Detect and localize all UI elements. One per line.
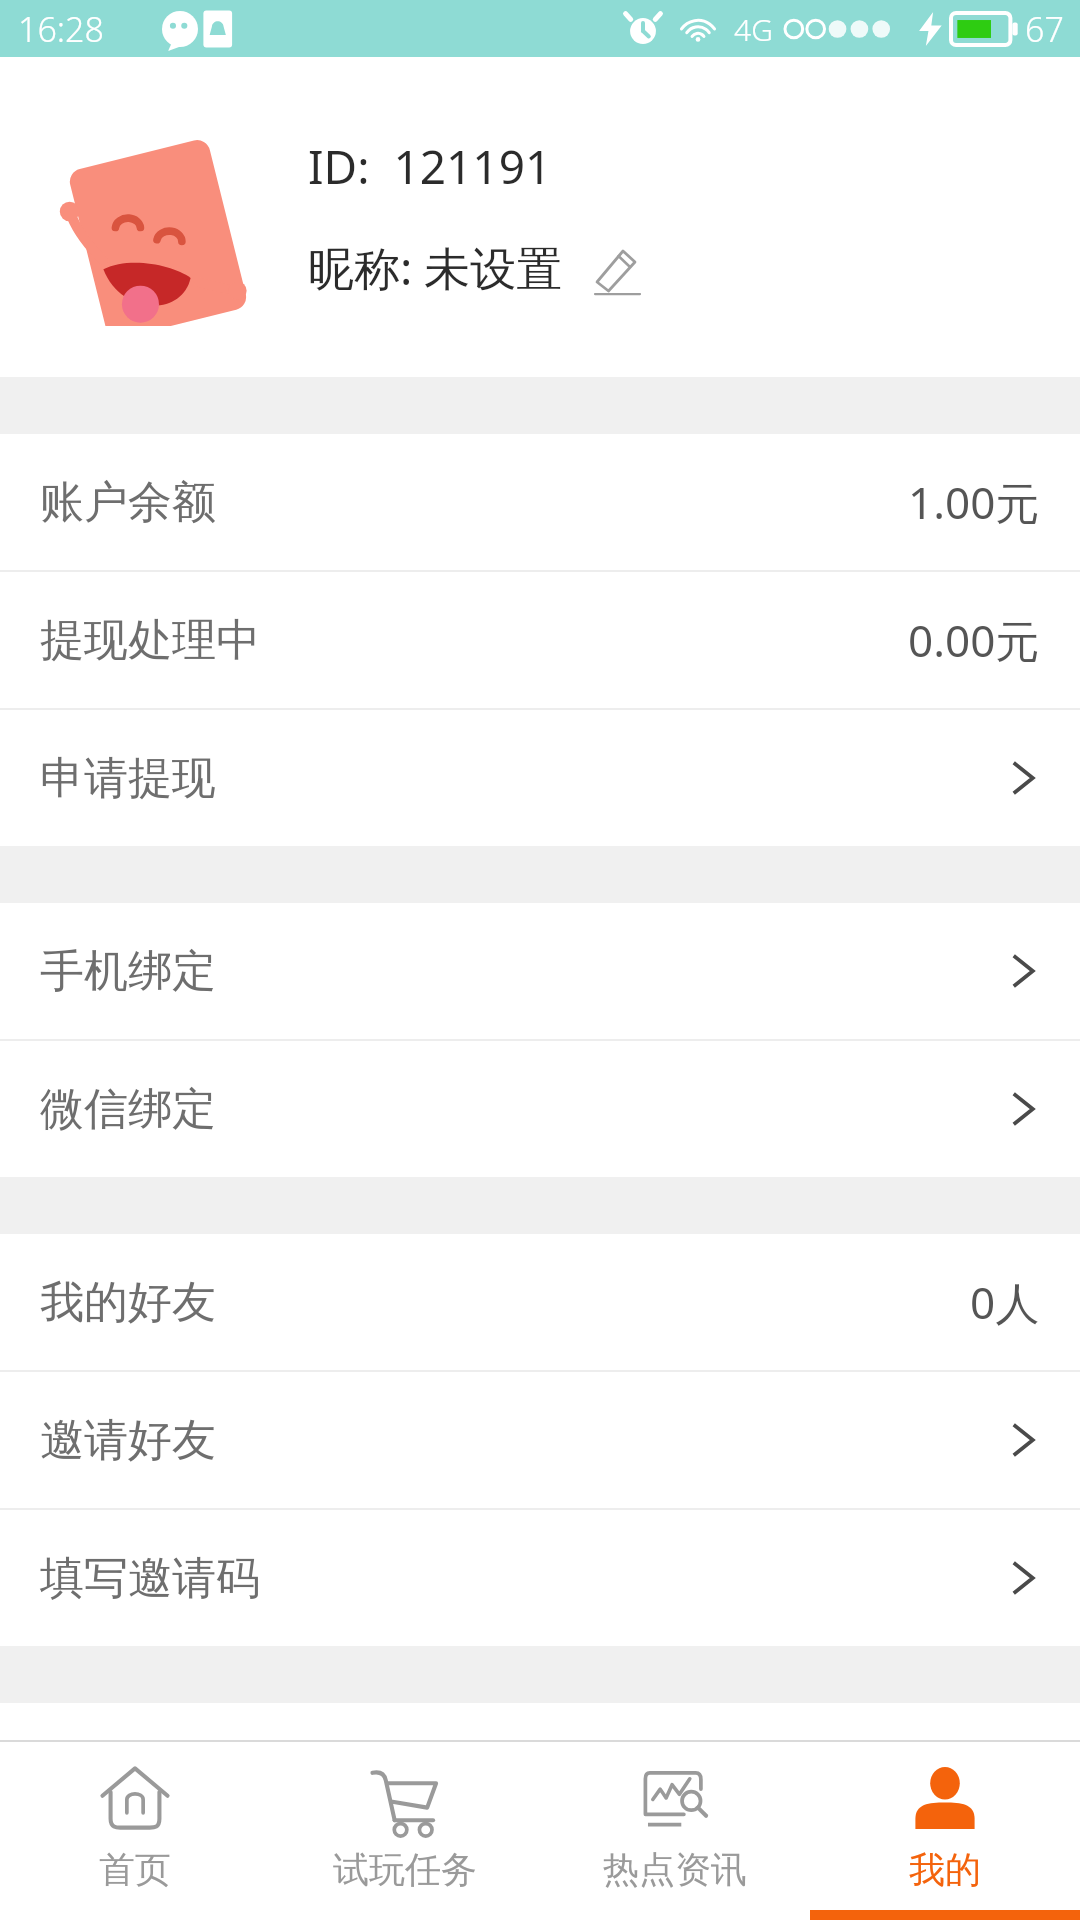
staticText: 提现处理中 bbox=[40, 613, 260, 668]
button[interactable]: 邀请好友 bbox=[0, 1372, 1080, 1508]
staticText: 填写邀请码 bbox=[40, 1551, 260, 1606]
staticText: 手机绑定 bbox=[40, 944, 216, 999]
staticText: 16:28 bbox=[18, 6, 104, 52]
button[interactable]: 编辑昵称 bbox=[589, 240, 645, 296]
staticText: 邀请好友 bbox=[40, 1413, 216, 1468]
staticText: 67 bbox=[1025, 6, 1064, 52]
staticText: 昵称: 未设置 bbox=[308, 236, 563, 299]
staticText: 1.00元 bbox=[908, 472, 1040, 532]
button[interactable]: 填写邀请码 bbox=[0, 1510, 1080, 1646]
button[interactable]: 我的 bbox=[810, 1742, 1080, 1910]
staticText: 微信绑定 bbox=[40, 1082, 216, 1137]
button[interactable]: 我的好友 bbox=[0, 1234, 1080, 1370]
button[interactable]: 头像 bbox=[38, 108, 256, 326]
staticText: 我的 bbox=[909, 1847, 981, 1892]
staticText: 试玩任务 bbox=[333, 1847, 477, 1892]
button[interactable]: 首页 bbox=[0, 1742, 270, 1910]
staticText: 4G bbox=[734, 9, 773, 50]
staticText: 我的好友 bbox=[40, 1275, 216, 1330]
button[interactable]: 账户余额 bbox=[0, 434, 1080, 570]
staticText: 申请提现 bbox=[40, 751, 216, 806]
staticText: 热点资讯 bbox=[603, 1847, 747, 1892]
staticText: 0.00元 bbox=[908, 610, 1040, 670]
staticText: 账户余额 bbox=[40, 475, 216, 530]
button[interactable]: 微信绑定 bbox=[0, 1041, 1080, 1177]
button[interactable]: 提现处理中 bbox=[0, 572, 1080, 708]
staticText: 0人 bbox=[970, 1272, 1040, 1332]
button[interactable]: 手机绑定 bbox=[0, 903, 1080, 1039]
staticText: 首页 bbox=[99, 1847, 171, 1892]
staticText: ID: 121191 bbox=[308, 135, 552, 198]
button[interactable]: 申请提现 bbox=[0, 710, 1080, 846]
button[interactable]: 热点资讯 bbox=[540, 1742, 810, 1910]
button[interactable]: 试玩任务 bbox=[270, 1742, 540, 1910]
